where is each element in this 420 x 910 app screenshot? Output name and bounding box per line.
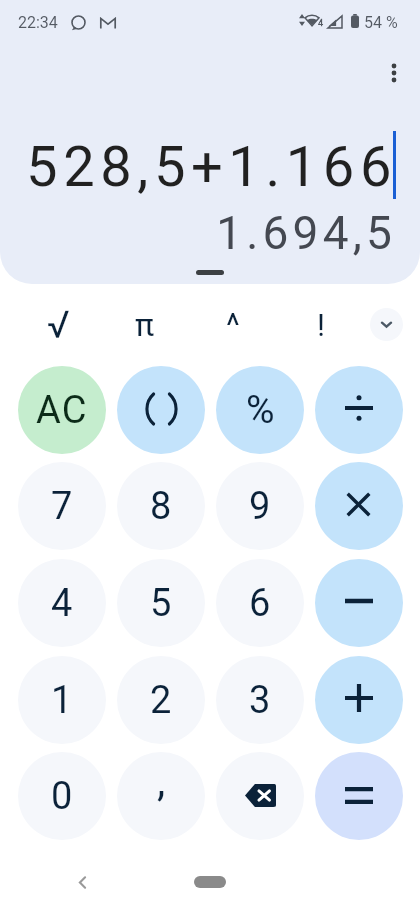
staticText: , bbox=[157, 757, 166, 806]
button[interactable]: 5 bbox=[117, 559, 205, 647]
staticText: 9 bbox=[249, 484, 271, 529]
button[interactable]: 6 bbox=[216, 559, 304, 647]
staticText: ^ bbox=[226, 306, 240, 345]
staticText: 0 bbox=[51, 774, 73, 819]
staticText: 3 bbox=[249, 678, 271, 723]
staticText: 8 bbox=[150, 484, 172, 529]
button[interactable]: √ bbox=[32, 302, 84, 348]
button[interactable]: 2 bbox=[117, 656, 205, 744]
button[interactable]: , bbox=[117, 752, 205, 840]
button[interactable]: Back bbox=[66, 866, 98, 898]
staticText: 54 % bbox=[364, 13, 398, 32]
staticText: 6 bbox=[249, 581, 271, 626]
button[interactable]: 7 bbox=[18, 462, 106, 550]
staticText: % bbox=[246, 387, 275, 433]
staticText: √ bbox=[47, 303, 70, 348]
staticText: 2 bbox=[150, 678, 172, 723]
button[interactable]: 0 bbox=[18, 752, 106, 840]
staticText: AC bbox=[36, 388, 88, 433]
staticText: 4 bbox=[51, 581, 73, 626]
button[interactable]: Divide bbox=[315, 366, 403, 454]
staticText: 4 bbox=[318, 18, 324, 29]
button[interactable]: Plus bbox=[315, 656, 403, 744]
button[interactable]: AC bbox=[18, 366, 106, 454]
staticText: 22:34 bbox=[18, 13, 58, 32]
button[interactable]: ! bbox=[295, 302, 347, 348]
button[interactable]: Multiply bbox=[315, 462, 403, 550]
staticText: 7 bbox=[51, 484, 73, 529]
staticText: ! bbox=[317, 307, 325, 343]
button[interactable]: Parentheses bbox=[117, 366, 205, 454]
staticText: 1 bbox=[51, 678, 73, 723]
button[interactable]: Home bbox=[194, 876, 226, 888]
button[interactable]: 1 bbox=[18, 656, 106, 744]
button[interactable]: 9 bbox=[216, 462, 304, 550]
button[interactable]: 4 bbox=[18, 559, 106, 647]
staticText: 5 bbox=[150, 581, 172, 626]
button[interactable]: More options bbox=[378, 57, 410, 89]
staticText: 1.694,5 bbox=[0, 206, 396, 260]
button[interactable]: Backspace bbox=[216, 752, 304, 840]
button[interactable]: 3 bbox=[216, 656, 304, 744]
button[interactable]: 8 bbox=[117, 462, 205, 550]
staticText: 528,5+1.166 bbox=[0, 134, 397, 200]
button[interactable]: % bbox=[216, 366, 304, 454]
button[interactable]: Expand keypad bbox=[370, 308, 403, 341]
staticText: π bbox=[135, 306, 155, 344]
button[interactable]: Equals bbox=[315, 752, 403, 840]
button[interactable]: Minus bbox=[315, 559, 403, 647]
button[interactable]: ^ bbox=[207, 302, 259, 348]
button[interactable]: π bbox=[119, 302, 171, 348]
